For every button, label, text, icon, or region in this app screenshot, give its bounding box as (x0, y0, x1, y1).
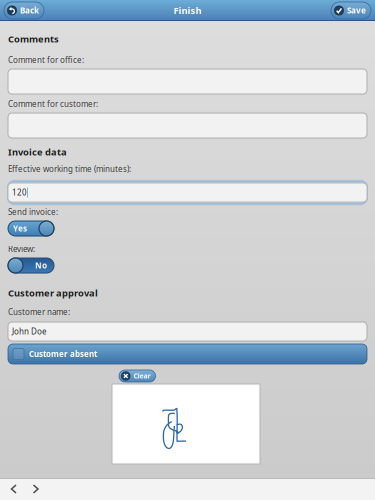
button[interactable]: Clear (119, 370, 155, 382)
staticText: Invoice data (8, 146, 67, 158)
staticText: Back (20, 5, 39, 16)
staticText: Review: (8, 244, 35, 254)
button[interactable]: Previous field (3, 478, 25, 500)
staticText: Customer absent (29, 349, 97, 359)
staticText: Customer approval (8, 287, 98, 299)
staticText: Comment for office: (8, 55, 84, 65)
staticText: 120 (12, 187, 27, 198)
staticText: Effective working time (minutes): (8, 164, 131, 174)
staticText: No (35, 260, 47, 271)
staticText: Clear (133, 372, 150, 380)
staticText: Send invoice: (8, 207, 58, 217)
button[interactable]: Back (4, 2, 44, 19)
button[interactable]: Save (331, 2, 371, 19)
button[interactable]: Customer absent (8, 344, 367, 364)
staticText: Yes (13, 223, 27, 234)
button[interactable]: Yes (8, 221, 54, 236)
button[interactable]: Next field (25, 478, 47, 500)
staticText: Finish (173, 4, 201, 17)
button[interactable]: No (8, 258, 54, 273)
staticText: Comment for customer: (8, 99, 98, 109)
staticText: John Doe (12, 326, 47, 337)
staticText: Comments (8, 33, 59, 45)
staticText: Customer name: (8, 307, 70, 317)
staticText: Save (347, 5, 366, 16)
